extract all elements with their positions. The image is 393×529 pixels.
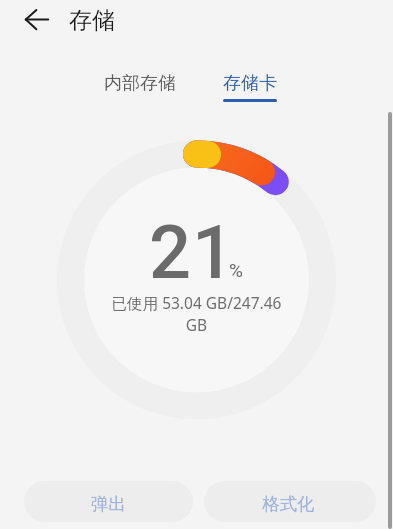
staticText: 已使用 53.04 GB/247.46 GB [106,292,287,335]
button[interactable]: 格式化 [204,481,376,522]
button[interactable]: 内部存储 [100,68,180,99]
staticText: 存储 [69,6,115,35]
staticText: 21 [149,209,236,296]
button[interactable]: 存储卡 [219,68,281,102]
staticText: 弹出 [91,493,126,515]
staticText: 格式化 [262,493,315,515]
staticText: % [229,259,243,281]
button[interactable]: Back [16,0,58,42]
button[interactable]: 弹出 [24,481,193,522]
staticText: 内部存储 [104,72,176,95]
staticText: 存储卡 [223,72,277,95]
